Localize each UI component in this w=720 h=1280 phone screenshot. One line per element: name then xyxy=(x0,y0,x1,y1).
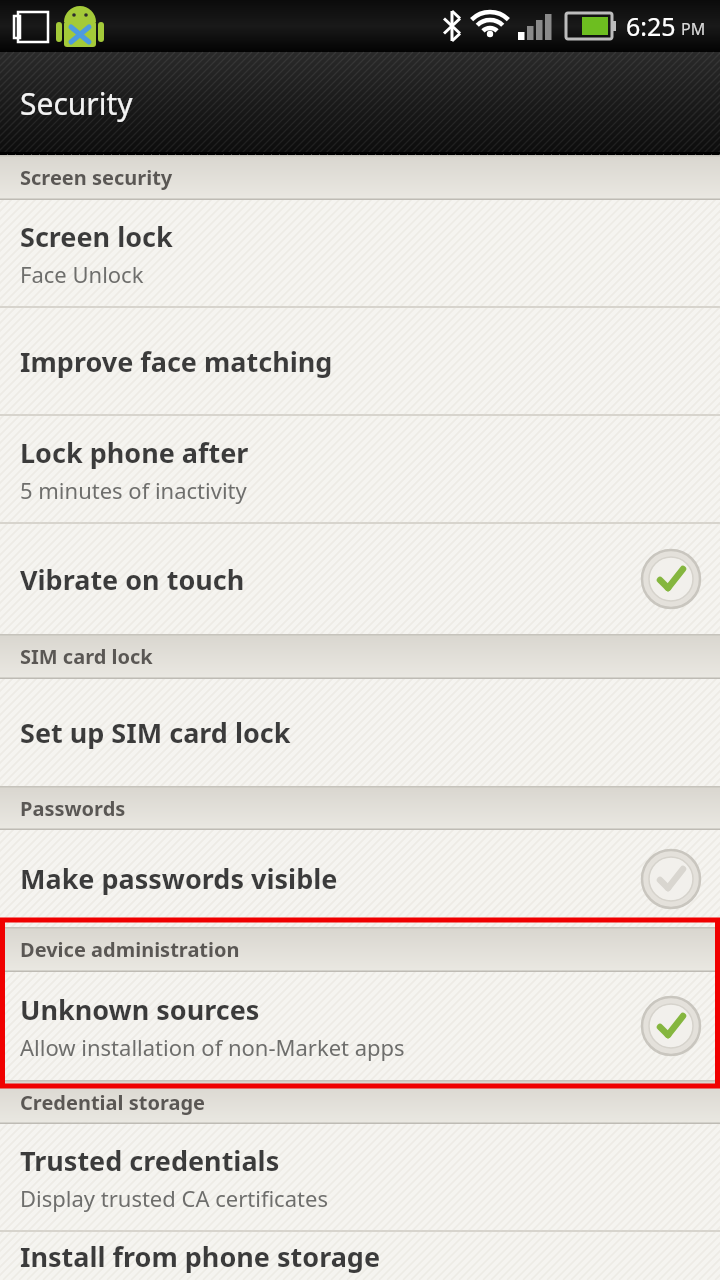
staticText: Allow installation of non-Market apps xyxy=(20,1032,405,1062)
staticText: Device administration xyxy=(20,936,240,963)
staticText: Screen lock xyxy=(20,218,173,255)
staticText: Unknown sources xyxy=(20,991,260,1028)
staticText: Set up SIM card lock xyxy=(20,714,291,751)
staticText: Install from phone storage xyxy=(20,1238,381,1275)
staticText: Credential storage xyxy=(20,1089,206,1116)
button[interactable]: Unknown sources xyxy=(0,972,720,1080)
button[interactable]: Vibrate on touch xyxy=(0,524,720,634)
staticText: Vibrate on touch xyxy=(20,561,245,598)
button[interactable]: Make passwords visible xyxy=(642,850,700,908)
button[interactable]: Set up SIM card lock xyxy=(0,679,720,786)
button[interactable]: Unknown sources xyxy=(642,997,700,1055)
staticText: Passwords xyxy=(20,795,126,822)
button[interactable]: Trusted credentials xyxy=(0,1124,720,1230)
button[interactable]: Install from phone storage xyxy=(0,1232,720,1280)
staticText: PM xyxy=(681,18,706,40)
staticText: SIM card lock xyxy=(20,643,153,670)
staticText: Face Unlock xyxy=(20,259,144,289)
staticText: 6:25 xyxy=(626,9,676,43)
button[interactable]: Vibrate on touch xyxy=(642,550,700,608)
staticText: Improve face matching xyxy=(20,343,333,380)
staticText: Screen security xyxy=(20,164,173,191)
staticText: Make passwords visible xyxy=(20,860,338,897)
button[interactable]: Screen lock xyxy=(0,200,720,306)
staticText: Security xyxy=(20,83,133,124)
button[interactable]: Lock phone after xyxy=(0,416,720,522)
button[interactable]: Make passwords visible xyxy=(0,830,720,927)
button[interactable]: Improve face matching xyxy=(0,308,720,414)
staticText: Display trusted CA certificates xyxy=(20,1183,328,1213)
staticText: 5 minutes of inactivity xyxy=(20,475,247,505)
staticText: Trusted credentials xyxy=(20,1142,280,1179)
staticText: Lock phone after xyxy=(20,434,249,471)
